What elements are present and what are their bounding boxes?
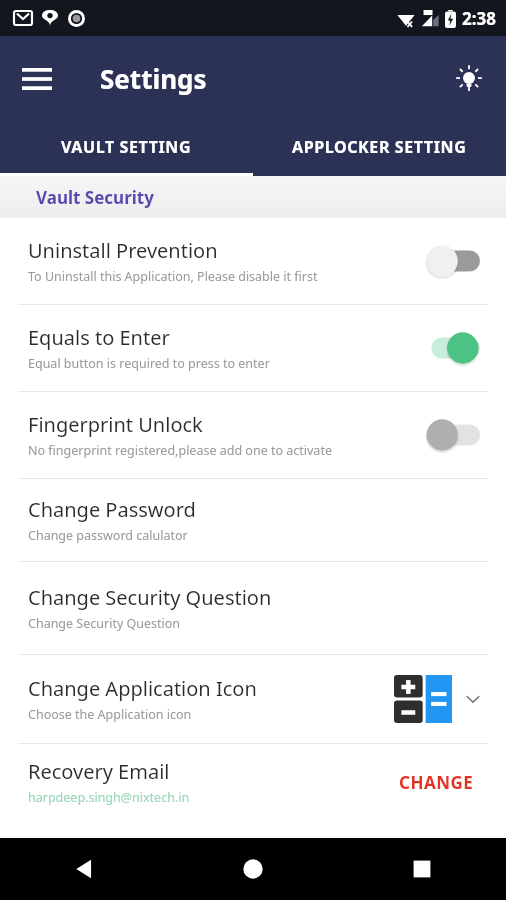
button[interactable]: Expand icon options xyxy=(460,686,486,712)
staticText: No fingerprint registered,please add one… xyxy=(28,442,332,459)
staticText: Change Security Question xyxy=(28,584,272,611)
staticText: Change Password xyxy=(28,496,196,523)
staticText: To Uninstall this Application, Please di… xyxy=(28,268,318,285)
staticText: Choose the Application icon xyxy=(28,706,192,723)
button[interactable]: Equals to Enter xyxy=(0,305,506,391)
button[interactable]: VAULT SETTING xyxy=(0,121,253,173)
staticText: Equal button is required to press to ent… xyxy=(28,355,270,372)
staticText: Change Security Question xyxy=(28,615,181,632)
staticText: Recovery Email xyxy=(28,758,170,785)
button[interactable]: Change Password xyxy=(0,479,506,561)
button[interactable]: Toggle theme brightness xyxy=(446,56,492,102)
staticText: 2:38 xyxy=(462,7,496,30)
staticText: APPLOCKER SETTING xyxy=(292,136,467,158)
staticText: Settings xyxy=(100,61,207,96)
staticText: CHANGE xyxy=(399,771,474,794)
staticText: harpdeep.singh@nixtech.in xyxy=(28,789,190,806)
button[interactable]: Open navigation menu xyxy=(14,56,60,102)
button[interactable]: Back xyxy=(0,838,168,900)
staticText: Change password calulator xyxy=(28,527,188,544)
staticText: VAULT SETTING xyxy=(61,136,192,158)
other: Calculator app icon xyxy=(394,675,452,723)
button[interactable]: Home xyxy=(168,838,337,900)
staticText: Fingerprint Unlock xyxy=(28,411,203,438)
staticText: Change Application Icon xyxy=(28,675,257,702)
button[interactable]: Toggle switch xyxy=(426,418,480,452)
button[interactable]: Toggle switch xyxy=(426,331,480,365)
button[interactable]: Fingerprint Unlock xyxy=(0,392,506,478)
button[interactable]: APPLOCKER SETTING xyxy=(253,121,506,173)
staticText: Vault Security xyxy=(36,186,154,209)
staticText: Equals to Enter xyxy=(28,324,170,351)
button[interactable]: Recovery Email xyxy=(0,744,506,820)
button[interactable]: CHANGE xyxy=(393,765,480,800)
button[interactable]: Toggle switch xyxy=(426,244,480,278)
staticText: Uninstall Prevention xyxy=(28,237,218,264)
button[interactable]: Recent apps xyxy=(337,838,506,900)
button[interactable]: Change Application Icon xyxy=(0,655,506,743)
button[interactable]: Uninstall Prevention xyxy=(0,218,506,304)
button[interactable]: Change Security Question xyxy=(0,562,506,654)
